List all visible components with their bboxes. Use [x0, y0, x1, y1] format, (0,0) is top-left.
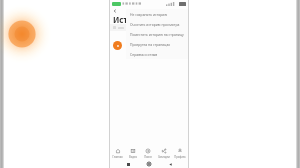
staticText: Закладки	[158, 155, 170, 159]
button[interactable]: Back	[167, 161, 173, 167]
button[interactable]: Прокрутка на страницах	[126, 39, 188, 49]
button[interactable]: Back	[112, 8, 118, 14]
staticText: Видео	[129, 155, 137, 159]
staticText: Очистить историю просмотра	[130, 22, 180, 27]
button[interactable]: Поиск	[140, 147, 156, 159]
staticText: Главная	[112, 155, 123, 159]
button[interactable]: Главная	[110, 147, 125, 159]
staticText: Прокрутка на страницах	[130, 42, 170, 47]
staticText: Профиль	[174, 155, 186, 159]
button[interactable]: Профиль	[172, 147, 188, 159]
staticText: Ист	[113, 14, 128, 24]
button[interactable]: Закладки	[156, 147, 172, 159]
button[interactable]: Compose	[113, 41, 122, 50]
button[interactable]: Поместить историю на страницу "М..	[126, 29, 188, 39]
staticText: Поиск	[144, 155, 152, 159]
button[interactable]: Справка и отзыв	[126, 49, 188, 59]
button[interactable]: Home	[146, 161, 152, 167]
button[interactable]: Не сохранять историю просмотра	[126, 9, 188, 19]
staticText: Поместить историю на страницу "М..	[130, 32, 184, 37]
staticText: Не сохранять историю просмотра	[130, 12, 184, 17]
button[interactable]: Recents	[125, 161, 131, 167]
button[interactable]: Очистить историю просмотра	[126, 19, 188, 29]
staticText: Справка и отзыв	[130, 52, 158, 57]
button[interactable]: Видео	[125, 147, 140, 159]
